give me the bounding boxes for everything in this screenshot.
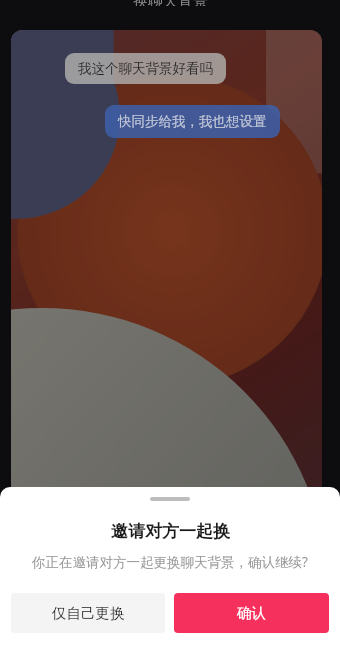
button[interactable]: 快同步给我，我也想设置 xyxy=(105,105,280,138)
button[interactable]: 仅自己更换 xyxy=(11,593,165,633)
button[interactable]: 确认 xyxy=(174,593,329,633)
staticText: 邀请对方一起换 xyxy=(111,521,230,542)
staticText: 换聊天背景 xyxy=(133,0,208,6)
staticText: 仅自己更换 xyxy=(52,604,125,622)
staticText: 确认 xyxy=(237,604,266,622)
staticText: 我这个聊天背景好看吗 xyxy=(78,60,213,77)
staticText: 快同步给我，我也想设置 xyxy=(118,113,267,130)
staticText: 你正在邀请对方一起更换聊天背景，确认继续? xyxy=(32,553,308,571)
button[interactable]: 我这个聊天背景好看吗 xyxy=(65,53,226,84)
